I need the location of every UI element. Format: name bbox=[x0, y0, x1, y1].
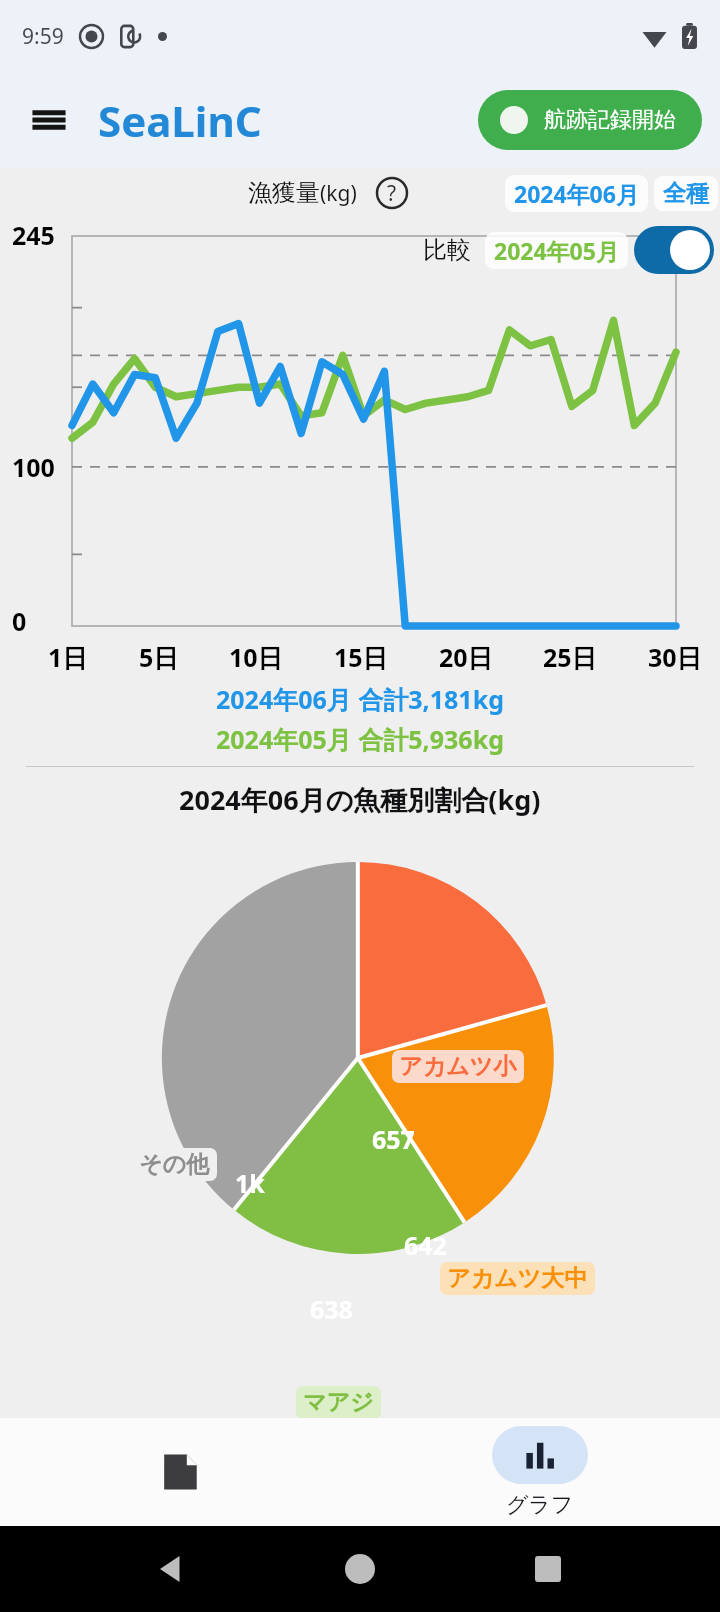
staticText: (kg) bbox=[320, 179, 357, 208]
staticText: 2024年05月 合計5,936kg bbox=[216, 722, 504, 756]
button[interactable]: 2024年05月 bbox=[485, 232, 628, 269]
button[interactable]: 航跡記録開始 bbox=[478, 90, 702, 150]
staticText: 2024年06月 合計3,181kg bbox=[216, 682, 504, 716]
staticText: SeaLinC bbox=[98, 92, 262, 149]
staticText: 20日 bbox=[439, 640, 493, 674]
staticText: 2024年06月の魚種別割合(kg) bbox=[179, 781, 541, 818]
button[interactable]: Comparison toggle bbox=[634, 226, 714, 274]
staticText: 漁獲量 bbox=[248, 178, 320, 208]
staticText: 1日 bbox=[48, 640, 88, 674]
staticText: 9:59 bbox=[22, 22, 64, 51]
button[interactable]: グラフ bbox=[360, 1418, 720, 1526]
other: Back bbox=[160, 1556, 186, 1582]
staticText: アカムツ小 bbox=[399, 1052, 517, 1081]
staticText: グラフ bbox=[506, 1491, 574, 1519]
staticText: ? bbox=[387, 179, 397, 208]
staticText: 航跡記録開始 bbox=[544, 106, 676, 134]
staticText: 10日 bbox=[229, 640, 283, 674]
staticText: 657 bbox=[372, 1122, 415, 1156]
staticText: 2024年05月 bbox=[494, 235, 619, 266]
staticText: アカムツ大中 bbox=[447, 1264, 588, 1293]
staticText: 15日 bbox=[334, 640, 388, 674]
staticText: 245 bbox=[12, 218, 55, 252]
staticText: 30日 bbox=[648, 640, 702, 674]
staticText: 642 bbox=[404, 1228, 447, 1262]
staticText: 25日 bbox=[543, 640, 597, 674]
staticText: 0 bbox=[12, 604, 27, 638]
staticText: マアジ bbox=[303, 1388, 374, 1417]
button[interactable]: Help bbox=[375, 176, 409, 210]
staticText: 2024年06月 bbox=[514, 178, 639, 209]
staticText: 全種 bbox=[663, 179, 709, 208]
other: Home bbox=[345, 1554, 375, 1584]
staticText: 1k bbox=[235, 1166, 265, 1200]
staticText: その他 bbox=[139, 1150, 210, 1179]
staticText: 100 bbox=[12, 450, 55, 484]
button[interactable]: Records bbox=[0, 1418, 360, 1526]
button[interactable]: Menu bbox=[22, 93, 76, 147]
staticText: 5日 bbox=[139, 640, 179, 674]
button[interactable]: 全種 bbox=[654, 176, 718, 211]
staticText: 比較 bbox=[423, 235, 471, 265]
button[interactable]: 2024年06月 bbox=[505, 175, 648, 212]
other: Recents bbox=[535, 1556, 561, 1582]
staticText: 638 bbox=[310, 1292, 353, 1326]
